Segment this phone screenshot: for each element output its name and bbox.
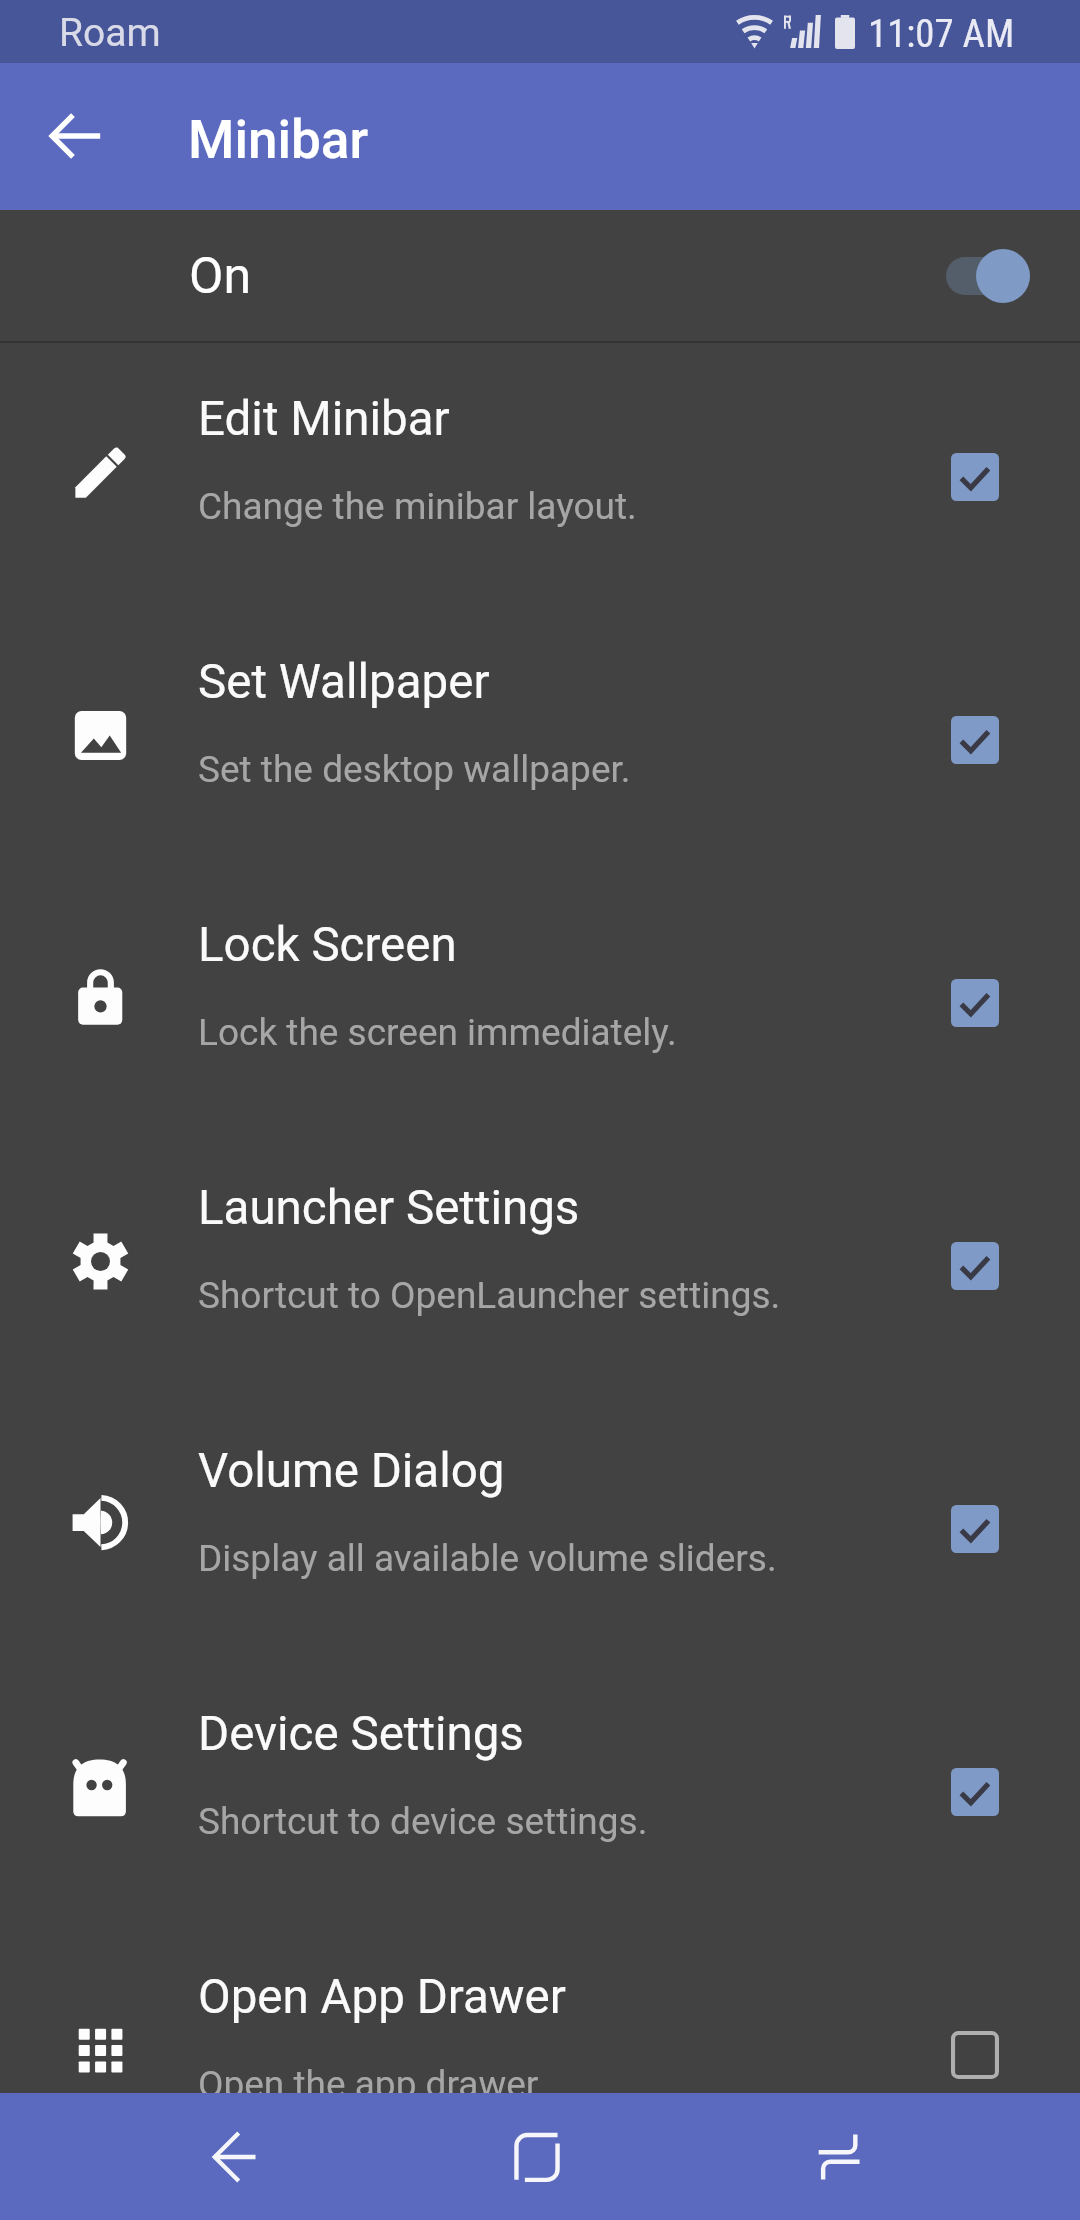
button[interactable]: Edit Minibar <box>0 343 1080 606</box>
button[interactable]: Launcher Settings <box>0 1132 1080 1395</box>
staticText: Lock Screen <box>198 917 457 973</box>
button[interactable]: Open App Drawer <box>951 2031 999 2079</box>
button[interactable]: Device Settings <box>951 1768 999 1816</box>
staticText: Lock the screen immediately. <box>198 1011 677 1054</box>
button[interactable]: Lock Screen <box>0 869 1080 1132</box>
staticText: 11:07 AM <box>868 11 1015 56</box>
button[interactable]: Device Settings <box>0 1658 1080 1921</box>
staticText: Open the app drawer. <box>198 2063 546 2093</box>
button[interactable]: Set Wallpaper <box>0 606 1080 869</box>
button[interactable]: Lock Screen <box>951 979 999 1027</box>
staticText: Minibar <box>188 109 369 171</box>
button[interactable]: Recent apps <box>779 2093 899 2220</box>
staticText: On <box>189 247 252 306</box>
staticText: Display all available volume sliders. <box>198 1537 777 1580</box>
button[interactable]: Launcher Settings <box>951 1242 999 1290</box>
staticText: Set the desktop wallpaper. <box>198 748 631 791</box>
staticText: Volume Dialog <box>198 1443 505 1499</box>
staticText: Device Settings <box>198 1706 524 1762</box>
staticText: Set Wallpaper <box>198 654 490 710</box>
button[interactable]: Edit Minibar <box>951 453 999 501</box>
staticText: Shortcut to OpenLauncher settings. <box>198 1274 781 1317</box>
staticText: Launcher Settings <box>198 1180 580 1236</box>
staticText: Change the minibar layout. <box>198 485 637 528</box>
button[interactable]: Home <box>477 2093 597 2220</box>
button[interactable]: Open App Drawer <box>0 1921 1080 2093</box>
button[interactable]: Navigate up <box>43 103 109 169</box>
button[interactable]: Volume Dialog <box>0 1395 1080 1658</box>
button[interactable]: Volume Dialog <box>951 1505 999 1553</box>
staticText: Shortcut to device settings. <box>198 1800 648 1843</box>
button[interactable]: Set Wallpaper <box>951 716 999 764</box>
button[interactable]: Back <box>175 2093 295 2220</box>
staticText: Edit Minibar <box>198 391 450 447</box>
button[interactable]: Toggle minibar <box>946 248 1032 304</box>
staticText: Roam <box>59 10 161 56</box>
button[interactable]: On <box>0 210 1080 341</box>
staticText: Open App Drawer <box>198 1969 566 2025</box>
